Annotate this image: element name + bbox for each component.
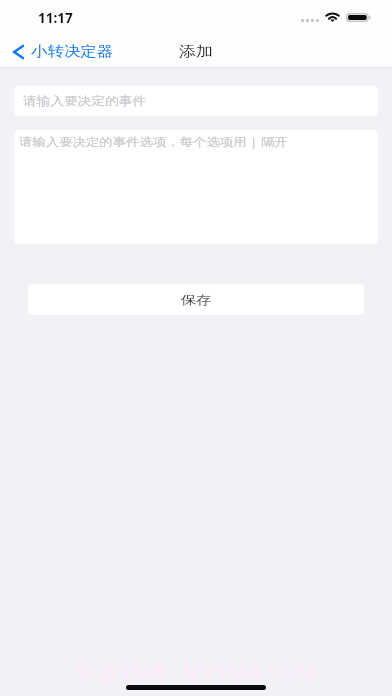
staticText: 添加	[179, 43, 213, 60]
staticText: 11:17	[38, 9, 73, 27]
button[interactable]: 保存	[28, 284, 364, 315]
button[interactable]: 请输入要决定的事件选项，每个选项用 | 隔开	[14, 130, 378, 244]
button[interactable]: 请输入要决定的事件	[14, 86, 378, 116]
staticText: 请输入要决定的事件选项，每个选项用 | 隔开	[19, 134, 288, 150]
staticText: 手游5588 - MX5588.COM	[75, 658, 316, 687]
staticText: 请输入要决定的事件	[23, 94, 147, 109]
staticText: 小转决定器	[31, 42, 114, 61]
staticText: 保存	[181, 292, 212, 307]
button[interactable]: Back to 小转决定器	[7, 41, 120, 62]
